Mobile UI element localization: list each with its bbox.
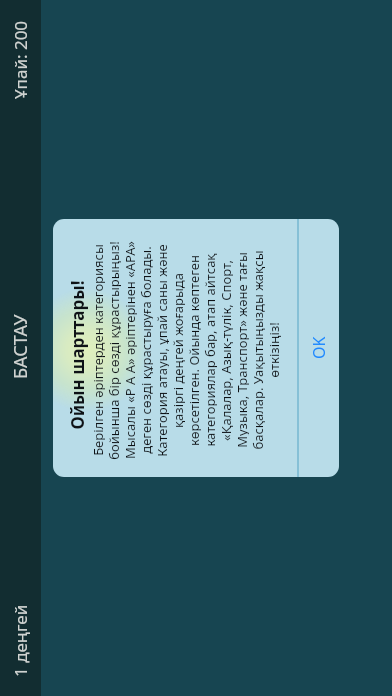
button[interactable]: 1 деңгей	[0, 594, 41, 696]
staticText: қазіргі деңгей жоғарыда	[169, 273, 185, 428]
staticText: Ойын шарттары!	[66, 280, 89, 430]
staticText: бойынша бір сөзді құрастырыңыз!	[105, 241, 121, 460]
staticText: Берілген әріптерден категориясы	[89, 244, 105, 456]
staticText: Музыка, Транспорт» және тағы	[233, 252, 249, 448]
staticText: Категория атауы, ұпай саны және	[153, 244, 169, 457]
staticText: OK	[308, 336, 330, 359]
staticText: өткізіңіз!	[265, 322, 281, 378]
button[interactable]: Ұпай: 200	[0, 0, 41, 109]
staticText: категориялар бар, атап айтсақ	[201, 253, 217, 447]
staticText: Ұпай: 200	[9, 20, 32, 99]
staticText: деген сөзді құрастыруға болады.	[137, 246, 153, 454]
staticText: 1 деңгей	[9, 604, 32, 677]
button[interactable]: OK	[299, 219, 339, 477]
staticText: «Қалалар, Азық-түлік, Спорт,	[217, 260, 233, 441]
staticText: басқалар. Уақытыңызды жақсы	[249, 250, 265, 450]
staticText: көрсетілген. Ойында көптеген	[185, 255, 201, 446]
staticText: БАСТАУ	[8, 314, 33, 379]
staticText: Мысалы «Р А А» әріптерінен «АРА»	[121, 241, 137, 459]
